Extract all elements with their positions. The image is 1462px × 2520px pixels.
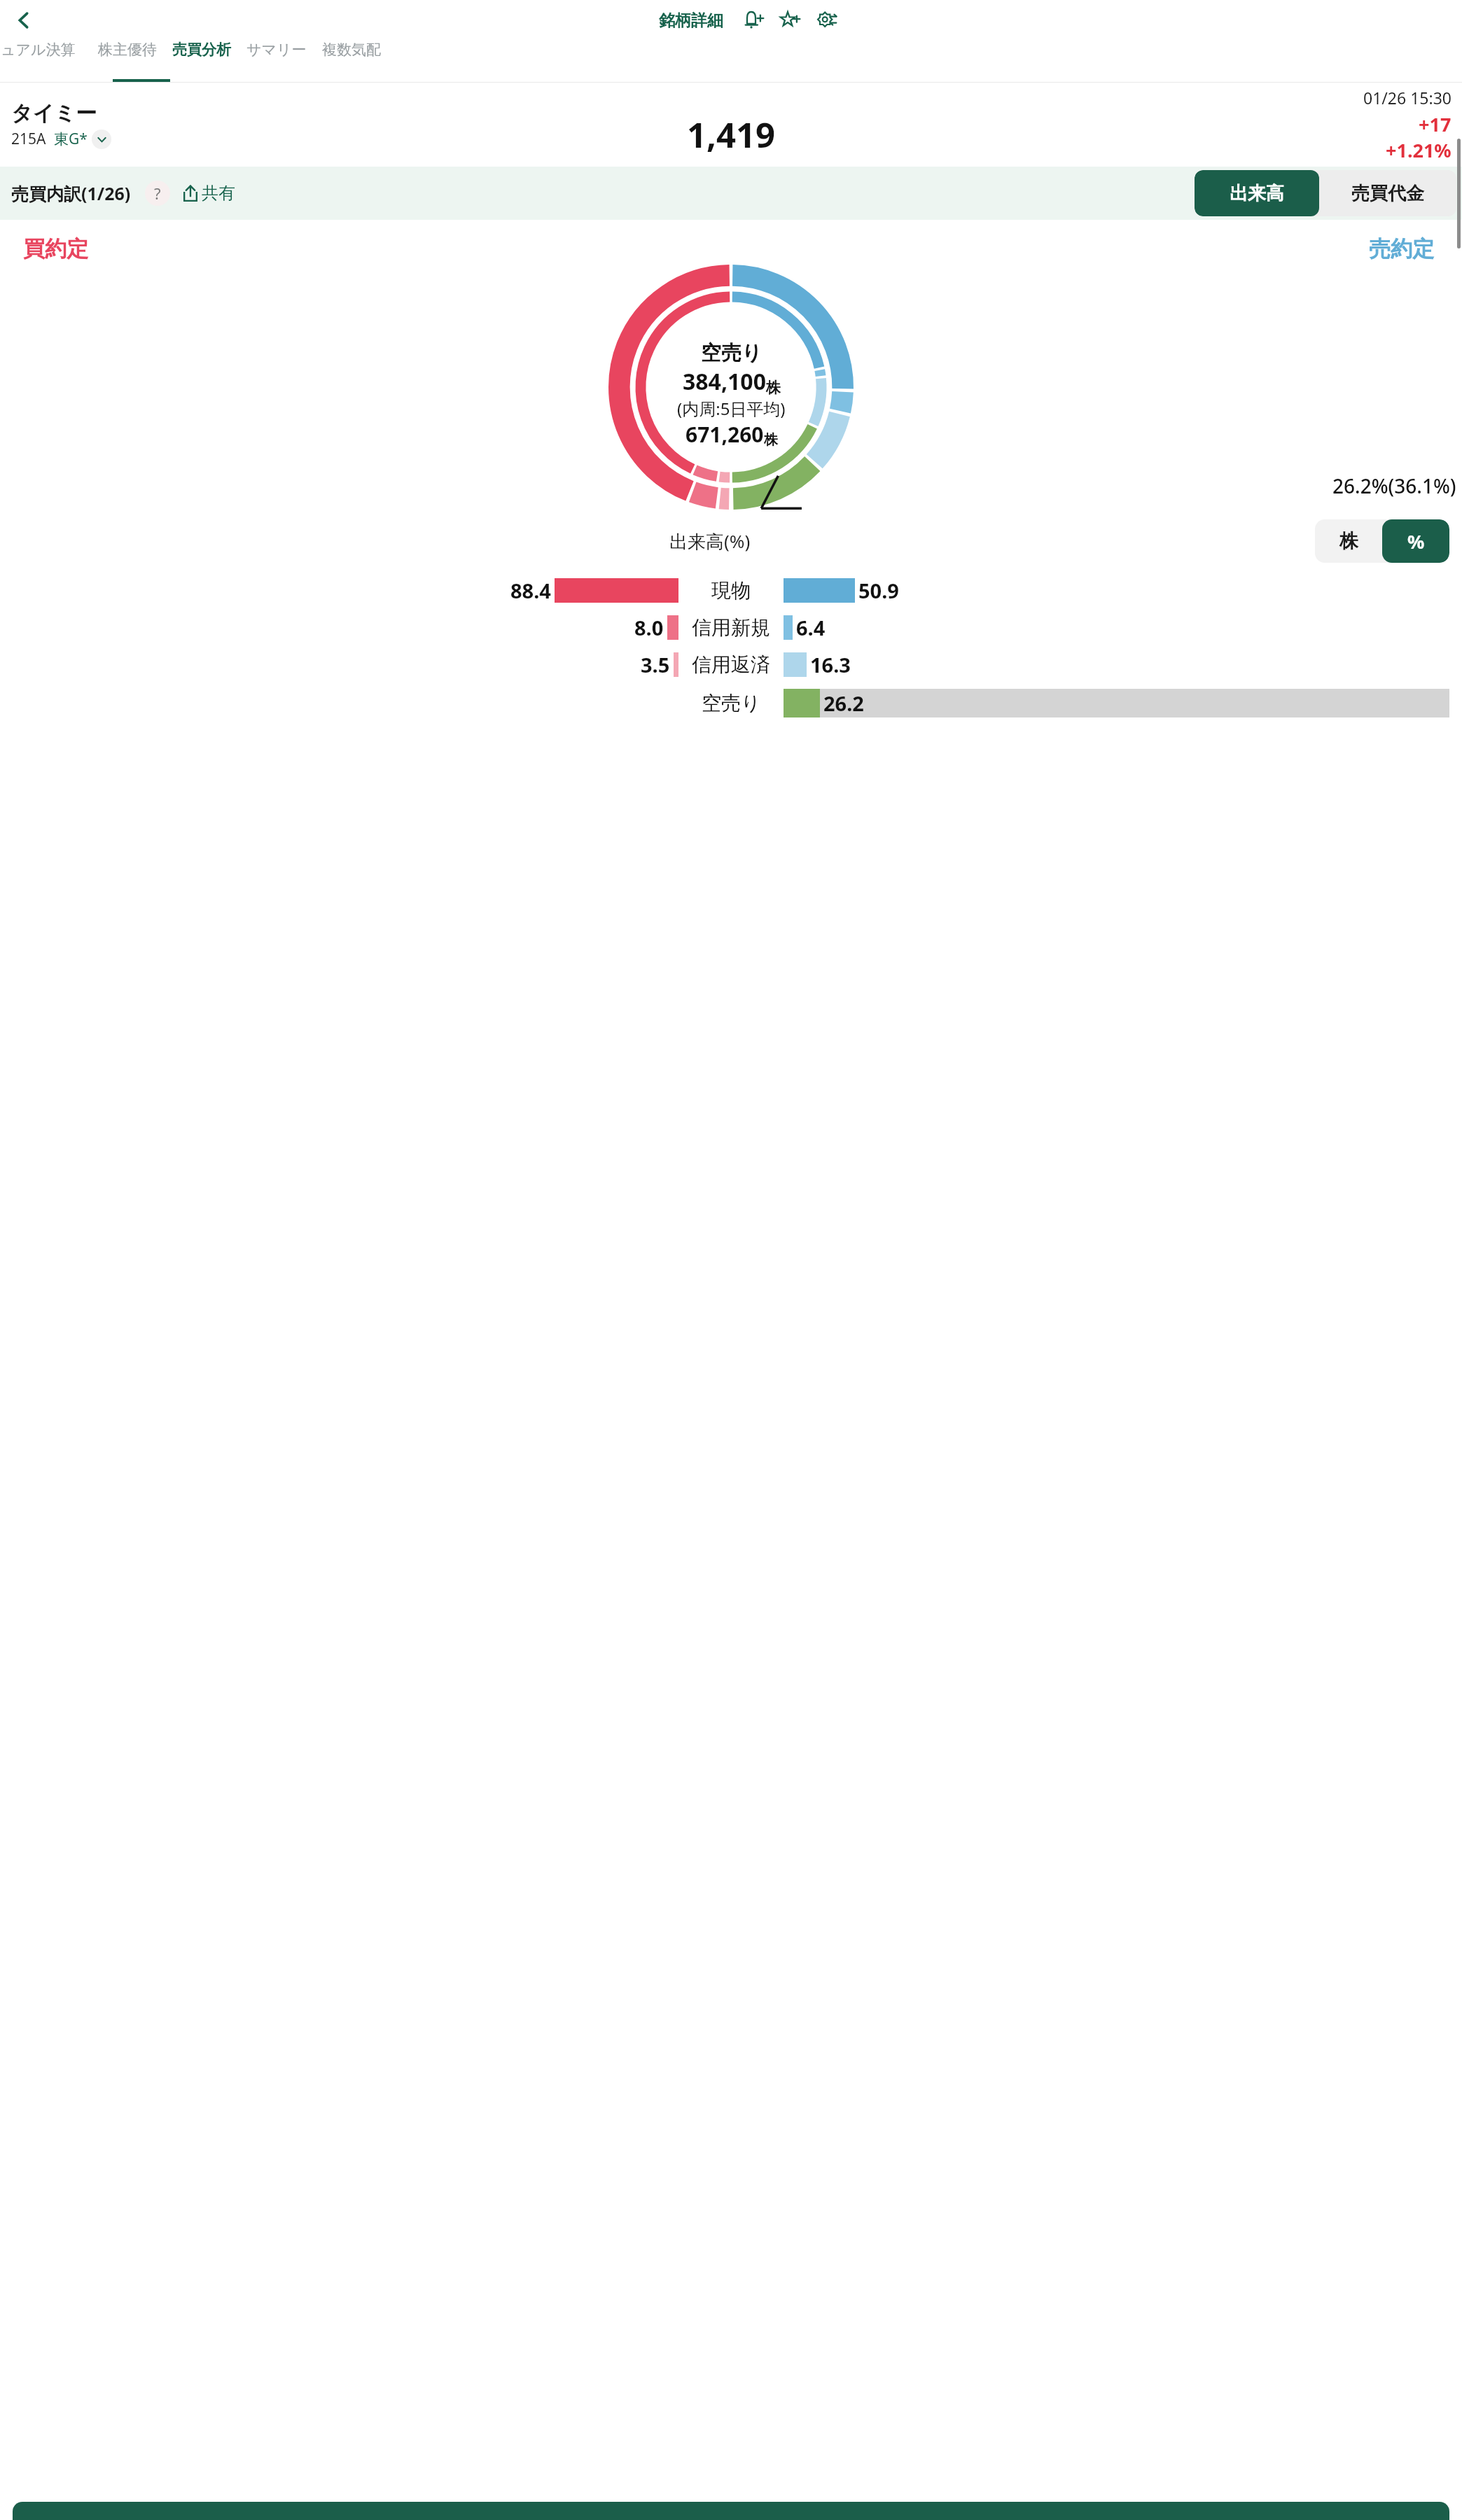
staticText: 空売り	[702, 691, 761, 715]
staticText: 株主優待	[98, 41, 157, 59]
staticText: 出来高	[1230, 182, 1284, 205]
button[interactable]: 株主優待	[98, 41, 157, 59]
button[interactable]	[13, 2502, 1449, 2520]
staticText: %	[1407, 528, 1425, 554]
staticText: 株	[766, 379, 781, 397]
button[interactable]: 空売り	[0, 687, 1462, 719]
staticText: 26.2	[823, 689, 864, 717]
staticText: 売約定	[1369, 235, 1434, 262]
staticText: 買約定	[23, 235, 88, 262]
staticText: 215A	[11, 129, 46, 149]
staticText: 384,100	[683, 366, 766, 397]
staticText: 共有	[202, 183, 235, 204]
staticText: 88.4	[510, 577, 551, 604]
button[interactable]: 売買分析	[172, 41, 231, 59]
staticText: 16.3	[810, 651, 851, 678]
staticText: +17	[1419, 111, 1451, 137]
staticText: 東G*	[54, 129, 88, 149]
staticText: ュアル決算	[1, 41, 76, 59]
button[interactable]: サマリー	[246, 41, 307, 59]
button[interactable]: ュアル決算	[1, 41, 76, 59]
staticText: 出来高(%)	[669, 528, 751, 554]
staticText: ?	[154, 183, 161, 204]
staticText: 売買内訳(1/26)	[11, 181, 131, 205]
button[interactable]: 複数気配	[322, 41, 381, 59]
staticText: 株	[1339, 529, 1358, 553]
staticText: 8.0	[634, 614, 664, 641]
staticText: 現物	[711, 578, 751, 603]
staticText: 01/26 15:30	[1363, 87, 1451, 108]
staticText: サマリー	[246, 41, 307, 59]
button[interactable]: 株	[1315, 519, 1382, 563]
button[interactable]: 8.0	[0, 612, 1462, 642]
staticText: (内周:5日平均)	[677, 397, 786, 420]
button[interactable]: 共有	[179, 180, 238, 206]
staticText: 複数気配	[322, 41, 381, 59]
staticText: 売買代金	[1351, 182, 1424, 205]
button[interactable]: 出来高	[1195, 170, 1319, 216]
button[interactable]: Back	[6, 2, 42, 38]
staticText: 671,260	[685, 420, 764, 449]
button[interactable]: 88.4	[0, 575, 1462, 605]
staticText: 1,419	[687, 111, 776, 158]
staticText: 6.4	[796, 614, 826, 641]
button[interactable]: Help	[145, 181, 170, 206]
staticText: 売買分析	[172, 41, 231, 59]
button[interactable]: Expand	[92, 129, 111, 149]
button[interactable]: Add alert	[737, 4, 770, 36]
staticText: 3.5	[641, 651, 670, 678]
staticText: +1.21%	[1386, 137, 1451, 163]
button[interactable]: %	[1382, 519, 1449, 563]
button[interactable]: 3.5	[0, 650, 1462, 679]
staticText: タイミー	[11, 100, 97, 127]
button[interactable]: Settings	[810, 4, 842, 36]
staticText: 50.9	[858, 577, 899, 604]
staticText: 信用返済	[692, 652, 770, 677]
button[interactable]: 売買代金	[1319, 170, 1456, 216]
staticText: 銘柄詳細	[659, 10, 723, 31]
button[interactable]: Add to watchlist	[774, 4, 806, 36]
staticText: 信用新規	[692, 615, 770, 640]
staticText: 株	[764, 431, 778, 449]
staticText: 空売り	[701, 340, 763, 366]
staticText: 26.2%(36.1%)	[1332, 472, 1456, 499]
